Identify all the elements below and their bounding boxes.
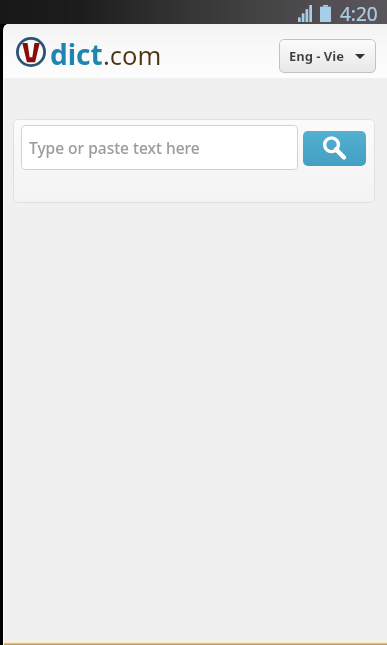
button[interactable]: Eng - Vie — [279, 39, 376, 73]
staticText: Type or paste text here — [29, 137, 200, 158]
button[interactable]: Type or paste text here — [21, 125, 298, 170]
staticText: .com — [103, 38, 162, 73]
staticText: dict — [50, 35, 103, 73]
staticText: Eng - Vie — [289, 47, 344, 65]
staticText: 4:20 — [340, 1, 378, 25]
button[interactable]: dict — [16, 33, 162, 71]
button[interactable]: Search — [303, 131, 366, 166]
